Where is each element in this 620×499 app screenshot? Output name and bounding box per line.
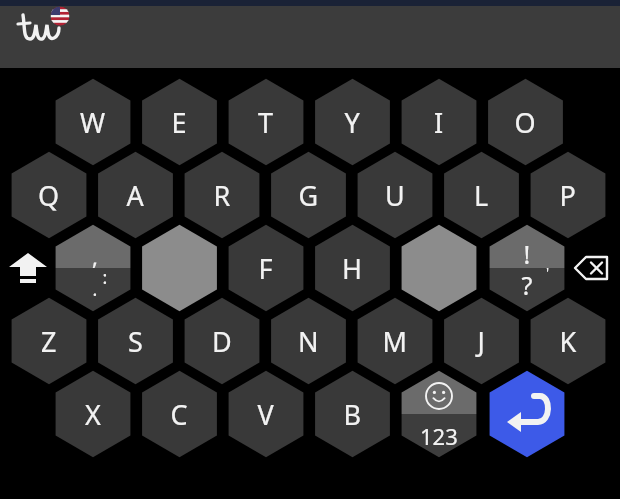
button[interactable]: H <box>314 223 391 313</box>
button[interactable]: Y <box>314 77 391 167</box>
button[interactable]: R <box>183 150 260 240</box>
button[interactable]: G <box>270 150 347 240</box>
button[interactable]: L <box>443 150 520 240</box>
button[interactable]: S <box>97 296 174 386</box>
button[interactable]: W <box>54 77 131 167</box>
button[interactable]: A <box>97 150 174 240</box>
button[interactable]: F <box>227 223 304 313</box>
button[interactable]: Shift <box>4 244 52 292</box>
button[interactable]: Emoji and numbers <box>400 369 477 459</box>
button[interactable]: Q <box>10 150 87 240</box>
button[interactable]: I <box>400 77 477 167</box>
button[interactable]: T <box>227 77 304 167</box>
button[interactable]: Z <box>10 296 87 386</box>
button[interactable]: X <box>54 369 131 459</box>
button[interactable]: Space <box>141 223 218 313</box>
button[interactable]: B <box>314 369 391 459</box>
button[interactable]: C <box>141 369 218 459</box>
button[interactable]: P <box>529 150 606 240</box>
button[interactable]: K <box>529 296 606 386</box>
button[interactable]: Backspace <box>568 244 616 292</box>
button[interactable]: Enter <box>488 369 565 459</box>
button[interactable]: M <box>356 296 433 386</box>
button[interactable]: E <box>141 77 218 167</box>
button[interactable]: Space <box>400 223 477 313</box>
button[interactable]: D <box>183 296 260 386</box>
button[interactable]: Comma colon period <box>54 223 131 313</box>
button[interactable]: O <box>487 77 564 167</box>
button[interactable]: V <box>227 369 304 459</box>
button[interactable]: Exclamation question mark <box>488 223 565 313</box>
button[interactable]: U <box>356 150 433 240</box>
button[interactable]: Keyboard language, English US <box>10 8 66 56</box>
button[interactable]: N <box>270 296 347 386</box>
button[interactable]: J <box>443 296 520 386</box>
